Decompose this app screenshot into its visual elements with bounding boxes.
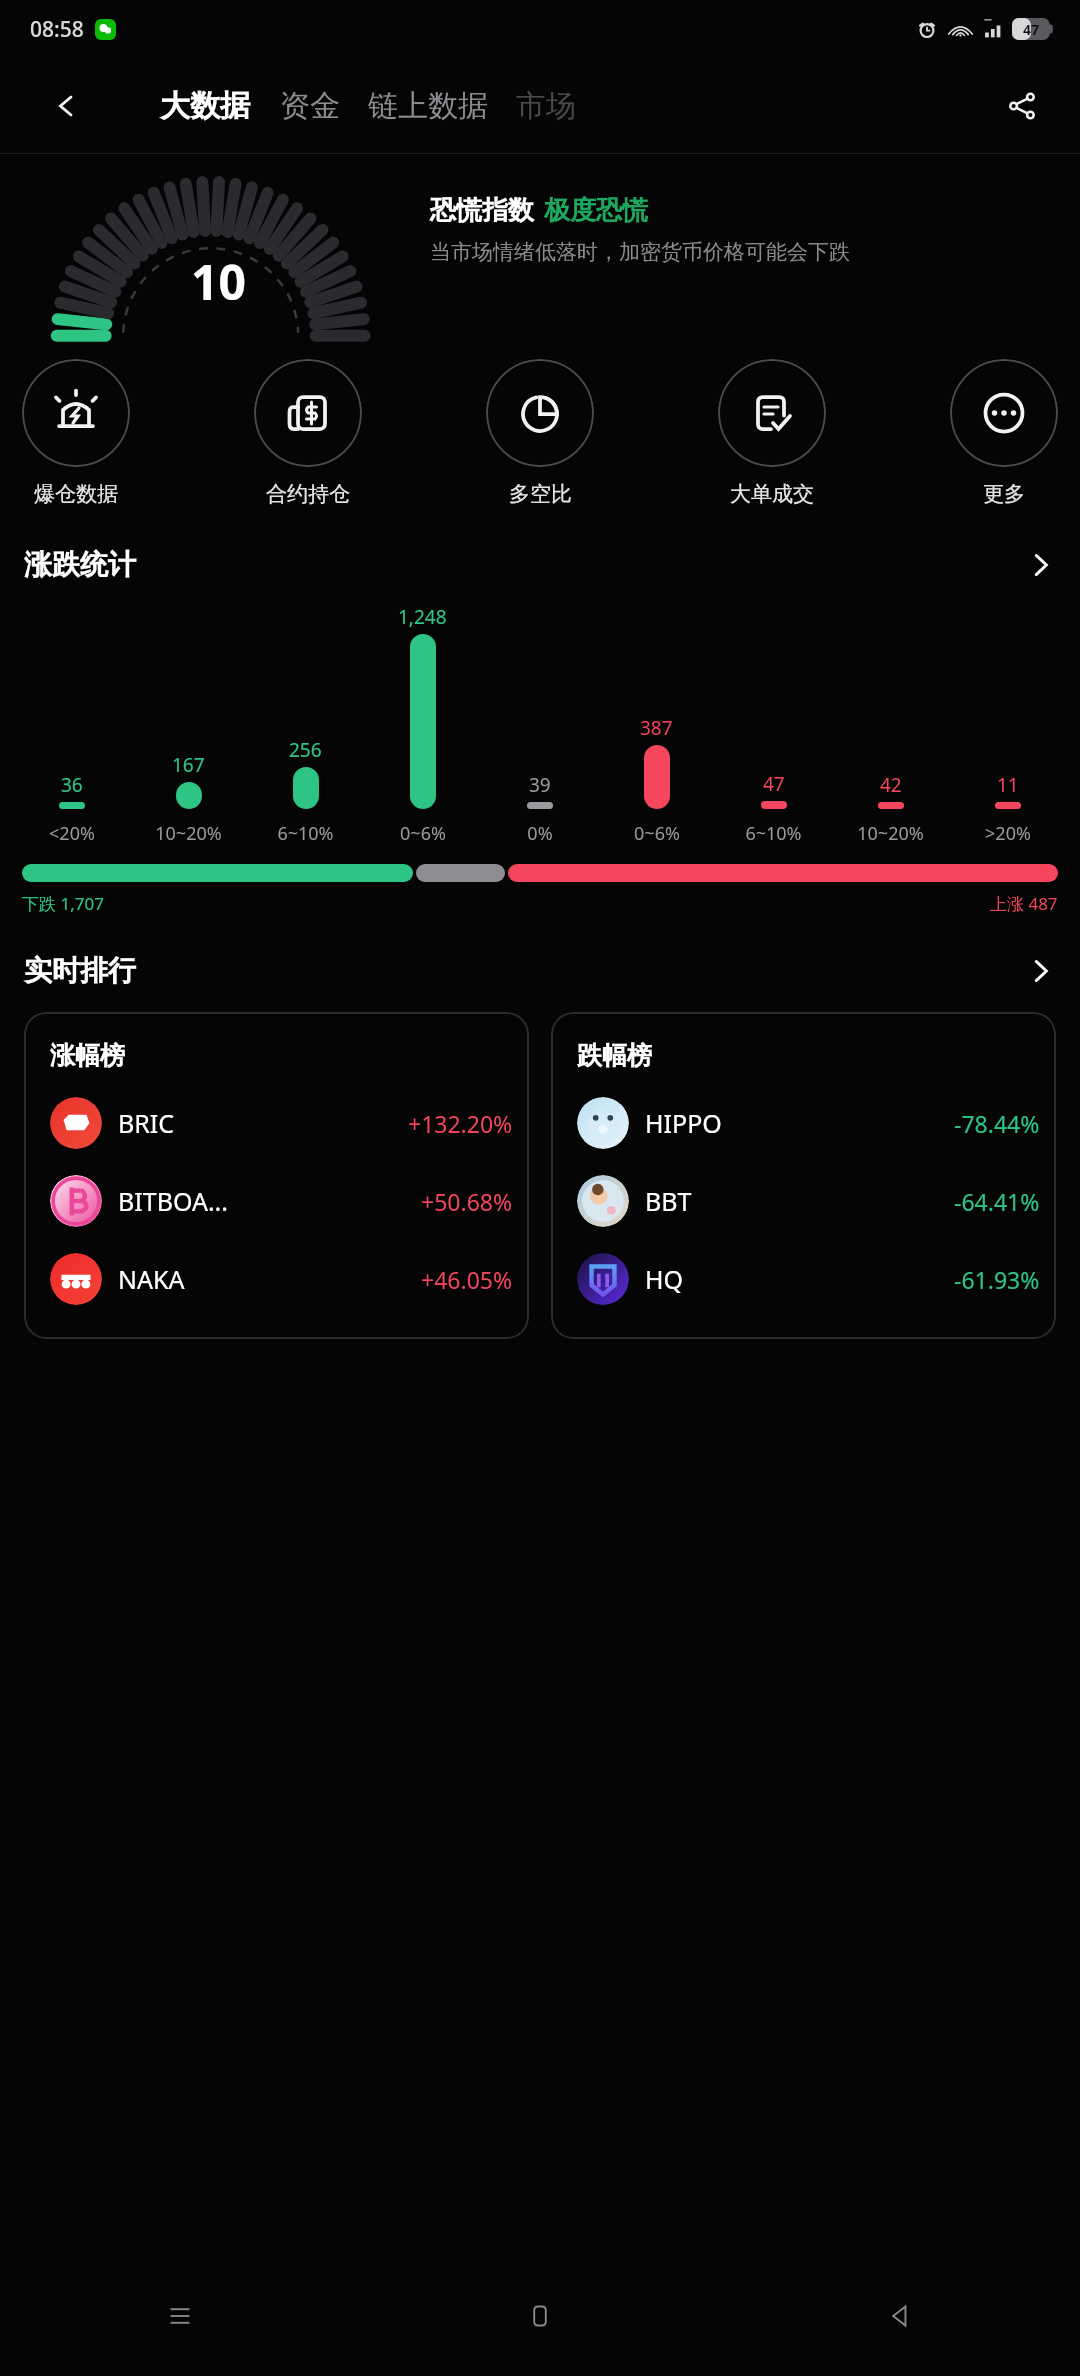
staticText: +132.20% [408, 1108, 513, 1139]
staticText: 合约持仓 [266, 481, 350, 507]
staticText: BBT [645, 1184, 692, 1218]
button[interactable]: NAKA [50, 1253, 515, 1305]
staticText: 涨幅榜 [50, 1040, 125, 1071]
button[interactable]: BRIC [50, 1097, 515, 1149]
staticText: 大数据 [160, 87, 250, 125]
staticText: 36 [61, 772, 83, 798]
staticText: 47 [763, 771, 785, 797]
button[interactable]: 涨幅榜 [24, 1012, 529, 1339]
button[interactable]: Recents [0, 2256, 360, 2376]
staticText: 08:58 [30, 15, 84, 44]
staticText: 10~20% [155, 821, 222, 846]
staticText: 下跌 1,707 [22, 892, 104, 915]
button[interactable]: 市场 [516, 87, 576, 125]
staticText: 多空比 [509, 481, 572, 507]
staticText: 256 [289, 737, 322, 763]
staticText: 10 [191, 249, 246, 314]
button[interactable]: 链上数据 [368, 87, 488, 125]
staticText: 0~6% [634, 821, 680, 846]
staticText: 47 [1023, 20, 1040, 39]
staticText: 涨跌统计 [24, 547, 136, 582]
staticText: 11 [997, 772, 1019, 798]
staticText: BRIC [118, 1106, 175, 1140]
button[interactable]: BBT [577, 1175, 1042, 1227]
button[interactable]: Back [44, 84, 88, 128]
button[interactable]: 爆仓数据 [22, 355, 130, 511]
button[interactable]: 更多 [950, 355, 1058, 511]
staticText: 恐慌指数 [430, 194, 534, 227]
staticText: 链上数据 [368, 87, 488, 125]
button[interactable]: HIPPO [577, 1097, 1042, 1149]
staticText: 387 [640, 715, 673, 741]
staticText: 当市场情绪低落时，加密货币价格可能会下跌 [430, 239, 850, 265]
staticText: 大单成交 [730, 481, 814, 507]
staticText: 42 [880, 772, 902, 798]
staticText: -78.44% [954, 1108, 1040, 1139]
button[interactable]: 大数据 [160, 87, 250, 125]
staticText: >20% [985, 821, 1031, 846]
staticText: BITBOA... [118, 1184, 228, 1218]
staticText: <20% [49, 821, 95, 846]
staticText: +50.68% [421, 1186, 513, 1217]
staticText: 0~6% [400, 821, 446, 846]
button[interactable]: 合约持仓 [254, 355, 362, 511]
button[interactable]: Back [720, 2256, 1080, 2376]
button[interactable]: 大单成交 [718, 355, 826, 511]
staticText: -64.41% [954, 1186, 1040, 1217]
staticText: 更多 [983, 481, 1025, 507]
button[interactable]: HQ [577, 1253, 1042, 1305]
staticText: 6~10% [277, 821, 334, 846]
button[interactable]: 跌幅榜 [551, 1012, 1056, 1339]
staticText: 极度恐慌 [544, 194, 648, 227]
staticText: HIPPO [645, 1106, 722, 1140]
staticText: 0% [527, 821, 553, 846]
staticText: -61.93% [954, 1264, 1040, 1295]
staticText: 爆仓数据 [34, 481, 118, 507]
staticText: 10~20% [857, 821, 924, 846]
button[interactable]: 多空比 [486, 355, 594, 511]
button[interactable]: Home [360, 2256, 720, 2376]
staticText: 资金 [280, 87, 340, 125]
staticText: 6~10% [745, 821, 802, 846]
staticText: 市场 [516, 87, 576, 125]
button[interactable]: 实时排行 [0, 947, 1080, 994]
staticText: NAKA [118, 1262, 185, 1296]
staticText: 167 [172, 752, 205, 778]
staticText: 1,248 [398, 604, 447, 630]
staticText: +46.05% [421, 1264, 513, 1295]
staticText: HQ [645, 1262, 684, 1296]
button[interactable]: BITBOA... [50, 1175, 515, 1227]
button[interactable]: 资金 [280, 87, 340, 125]
staticText: 39 [529, 772, 551, 798]
staticText: 实时排行 [24, 953, 136, 988]
staticText: 跌幅榜 [577, 1040, 652, 1071]
staticText: 上涨 487 [990, 892, 1058, 915]
button[interactable]: 涨跌统计 [0, 541, 1080, 588]
button[interactable]: Share [1000, 84, 1044, 128]
